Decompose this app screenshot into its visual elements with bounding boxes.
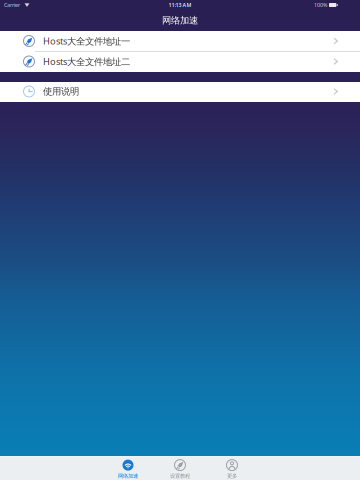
button[interactable]: 设置教程 [154, 457, 206, 480]
button[interactable]: 更多 [206, 457, 258, 480]
staticText: 网络加速 [162, 15, 198, 26]
button[interactable]: 使用说明 [0, 82, 360, 102]
staticText: 使用说明 [43, 86, 79, 97]
staticText: 网络加速 [118, 473, 138, 479]
staticText: Hosts大全文件地址二 [43, 55, 130, 68]
button[interactable]: 网络加速 [102, 457, 154, 480]
button[interactable]: Hosts大全文件地址一 [0, 31, 360, 52]
staticText: Hosts大全文件地址一 [43, 35, 130, 47]
staticText: Carrier [4, 1, 20, 9]
staticText: 设置教程 [170, 473, 190, 479]
staticText: 100% [314, 1, 327, 9]
button[interactable]: Hosts大全文件地址二 [0, 52, 360, 72]
staticText: 更多 [227, 473, 237, 479]
staticText: 11:13 AM [168, 1, 191, 9]
